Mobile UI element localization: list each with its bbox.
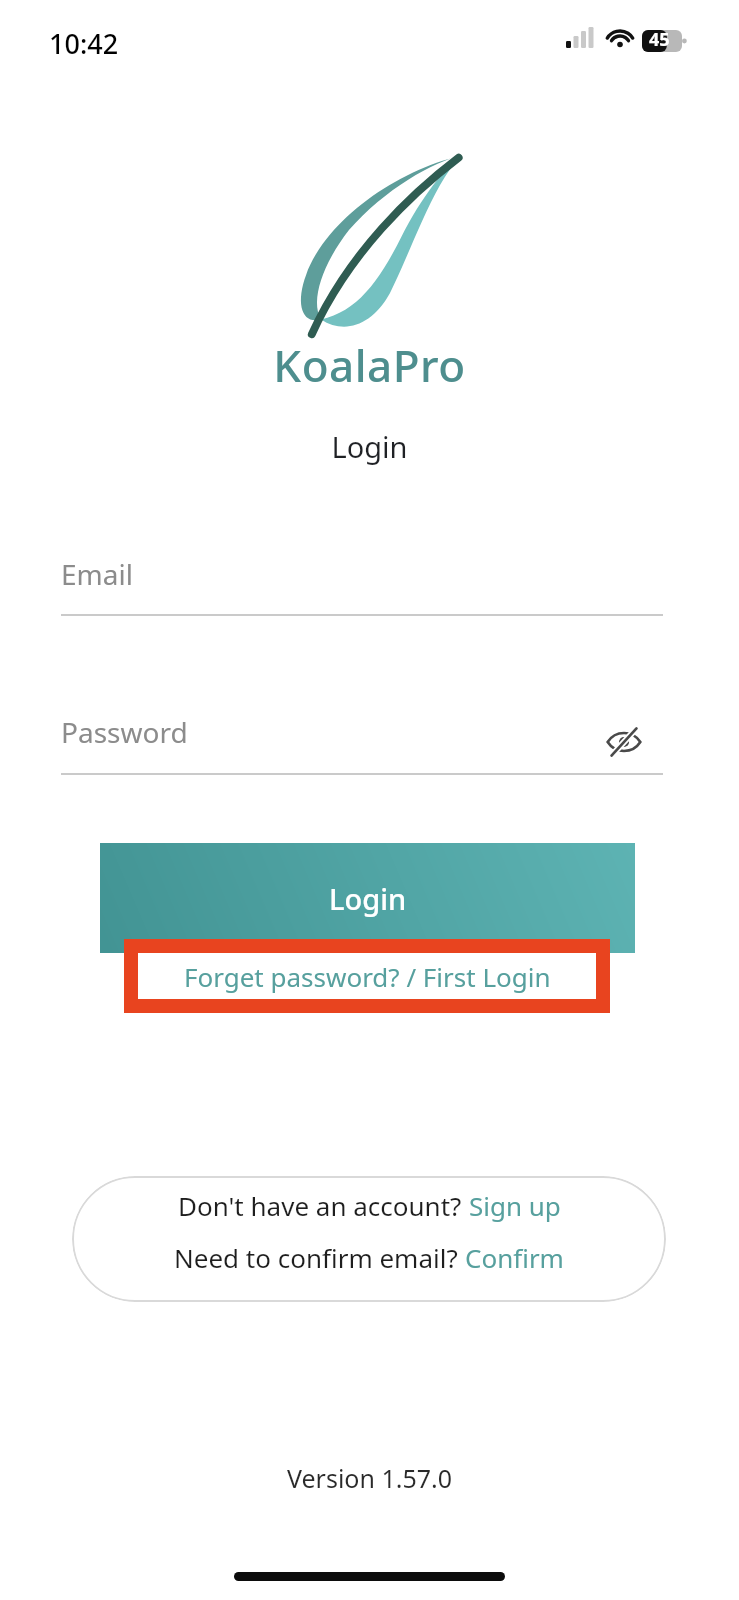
button[interactable]: Confirm (465, 1240, 564, 1275)
button[interactable]: Show password (600, 722, 648, 762)
staticText: Confirm (465, 1240, 564, 1275)
button[interactable]: Sign up (469, 1188, 561, 1223)
staticText: 10:42 (49, 25, 119, 62)
button[interactable]: Login (100, 843, 635, 953)
staticText: 45 (649, 27, 670, 52)
button[interactable]: Forget password? / First Login (138, 953, 596, 999)
staticText: Login (0, 427, 739, 1600)
staticText: Password (61, 713, 188, 751)
staticText: Don't have an account? (178, 1188, 469, 1223)
staticText: KoalaPro (0, 335, 739, 1600)
staticText: Login (329, 879, 407, 918)
staticText: Email (61, 555, 133, 593)
staticText: Sign up (469, 1188, 561, 1223)
staticText: Need to confirm email? (174, 1240, 465, 1275)
staticText: Version 1.57.0 (0, 1461, 739, 1600)
staticText: Forget password? / First Login (184, 959, 551, 994)
